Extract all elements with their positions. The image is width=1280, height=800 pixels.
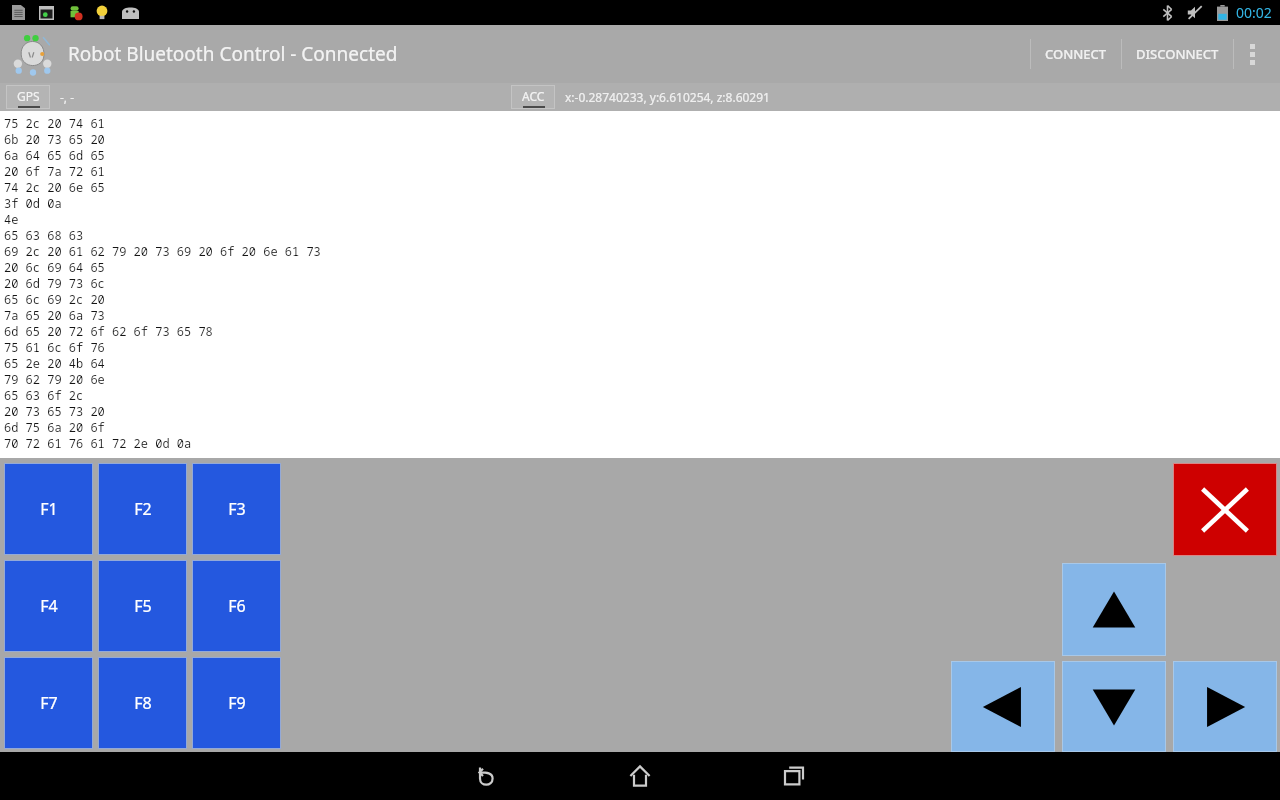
- staticText: 7a 65 20 6a 73: [4, 307, 105, 323]
- staticText: 4e: [4, 211, 19, 227]
- button[interactable]: More options: [1234, 25, 1270, 83]
- button[interactable]: F2: [98, 463, 187, 555]
- button[interactable]: F3: [192, 463, 281, 555]
- staticText: 65 63 68 63: [4, 227, 84, 243]
- staticText: F3: [228, 498, 246, 520]
- button[interactable]: GPS: [6, 85, 50, 109]
- button[interactable]: Recents: [762, 752, 826, 800]
- button[interactable]: CONNECT: [1031, 25, 1121, 83]
- staticText: 65 63 6f 2c: [4, 387, 84, 403]
- staticText: 70 72 61 76 61 72 2e 0d 0a: [4, 435, 192, 451]
- button[interactable]: Right: [1173, 661, 1277, 752]
- staticText: -, -: [60, 89, 75, 105]
- staticText: GPS: [17, 88, 40, 104]
- staticText: F1: [40, 498, 58, 520]
- button[interactable]: F1: [4, 463, 93, 555]
- staticText: 6d 75 6a 20 6f: [4, 419, 105, 435]
- staticText: DISCONNECT: [1136, 45, 1219, 63]
- button[interactable]: Down: [1062, 661, 1166, 752]
- staticText: 74 2c 20 6e 65: [4, 179, 105, 195]
- button[interactable]: F4: [4, 560, 93, 652]
- staticText: F6: [228, 595, 246, 617]
- staticText: 20 6d 79 73 6c: [4, 275, 105, 291]
- staticText: 75 2c 20 74 61: [4, 115, 105, 131]
- button[interactable]: Home: [608, 752, 672, 800]
- staticText: F5: [134, 595, 152, 617]
- button[interactable]: F9: [192, 657, 281, 749]
- button[interactable]: F5: [98, 560, 187, 652]
- button[interactable]: Back: [454, 752, 518, 800]
- staticText: CONNECT: [1045, 45, 1107, 63]
- staticText: 20 6f 7a 72 61: [4, 163, 105, 179]
- button[interactable]: ACC: [511, 85, 555, 109]
- button[interactable]: Disconnect: [1173, 463, 1277, 556]
- staticText: 00:02: [1236, 3, 1272, 22]
- staticText: 6d 65 20 72 6f 62 6f 73 65 78: [4, 323, 213, 339]
- staticText: x:-0.28740233, y:6.610254, z:8.60291: [565, 89, 770, 105]
- staticText: F2: [134, 498, 152, 520]
- button[interactable]: F6: [192, 560, 281, 652]
- button[interactable]: DISCONNECT: [1122, 25, 1233, 83]
- button[interactable]: F7: [4, 657, 93, 749]
- staticText: 69 2c 20 61 62 79 20 73 69 20 6f 20 6e 6…: [4, 243, 321, 259]
- staticText: 65 2e 20 4b 64: [4, 355, 105, 371]
- staticText: F9: [228, 692, 246, 714]
- staticText: 20 6c 69 64 65: [4, 259, 105, 275]
- button[interactable]: Up: [1062, 563, 1166, 656]
- staticText: Robot Bluetooth Control - Connected: [68, 41, 398, 67]
- staticText: 6b 20 73 65 20: [4, 131, 105, 147]
- staticText: 79 62 79 20 6e: [4, 371, 105, 387]
- staticText: F8: [134, 692, 152, 714]
- staticText: ACC: [522, 88, 545, 104]
- staticText: 65 6c 69 2c 20: [4, 291, 105, 307]
- staticText: 75 61 6c 6f 76: [4, 339, 105, 355]
- staticText: F4: [40, 595, 58, 617]
- staticText: F7: [40, 692, 58, 714]
- staticText: 3f 0d 0a: [4, 195, 62, 211]
- staticText: 6a 64 65 6d 65: [4, 147, 105, 163]
- staticText: 20 73 65 73 20: [4, 403, 105, 419]
- button[interactable]: Left: [951, 661, 1055, 752]
- button[interactable]: F8: [98, 657, 187, 749]
